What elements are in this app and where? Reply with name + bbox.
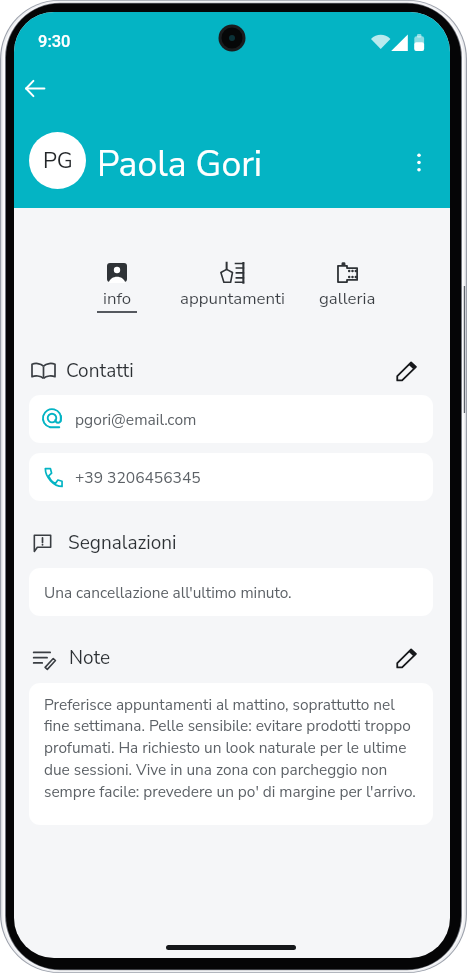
staticText: 9:30 bbox=[38, 32, 71, 51]
staticText: pgori@email.com bbox=[75, 409, 197, 430]
staticText: Contatti bbox=[66, 358, 134, 384]
button[interactable]: Una cancellazione all'ultimo minuto. bbox=[29, 568, 433, 616]
button[interactable]: info bbox=[60, 254, 174, 313]
staticText: Note bbox=[69, 645, 111, 671]
staticText: appuntamenti bbox=[180, 287, 285, 310]
button[interactable]: Modifica Note bbox=[392, 643, 420, 673]
staticText: Segnalazioni bbox=[68, 530, 177, 556]
staticText: +39 3206456345 bbox=[75, 467, 201, 488]
staticText: Paola Gori bbox=[97, 140, 263, 188]
staticText: galleria bbox=[319, 287, 376, 310]
button[interactable]: Indietro bbox=[15, 68, 55, 108]
staticText: PG bbox=[43, 146, 73, 176]
button[interactable]: +39 3206456345 bbox=[29, 453, 433, 501]
staticText: Preferisce appuntamenti al mattino, sopr… bbox=[44, 694, 420, 803]
button[interactable]: Modifica Contatti bbox=[392, 356, 420, 386]
button[interactable]: Altre opzioni bbox=[402, 145, 436, 179]
button[interactable]: appuntamenti bbox=[175, 254, 289, 311]
button[interactable]: Foto profilo bbox=[29, 132, 86, 189]
staticText: info bbox=[103, 287, 132, 310]
staticText: Una cancellazione all'ultimo minuto. bbox=[44, 582, 292, 603]
button[interactable]: Preferisce appuntamenti al mattino, sopr… bbox=[29, 683, 433, 825]
button[interactable]: pgori@email.com bbox=[29, 395, 433, 443]
button[interactable]: galleria bbox=[290, 254, 404, 311]
